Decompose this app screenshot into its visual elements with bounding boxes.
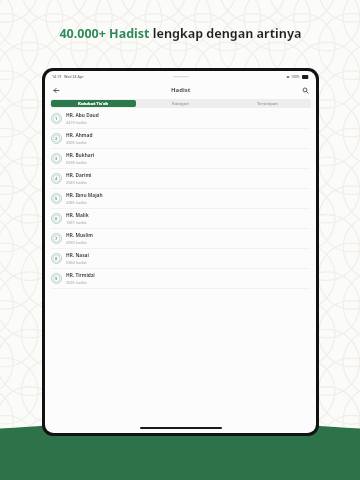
button[interactable]: Tersimpan (225, 100, 310, 107)
button[interactable]: Search (299, 84, 311, 96)
button[interactable]: 9 (45, 269, 316, 288)
button[interactable]: Kutubut Tis'ah (51, 100, 136, 107)
staticText: 4285 hadist (66, 200, 87, 205)
staticText: 1587 hadist (66, 220, 87, 225)
staticText: 2 (55, 136, 58, 141)
button[interactable]: 5 (45, 189, 316, 208)
staticText: 4930 hadist (66, 240, 87, 245)
button[interactable]: 2 (45, 129, 316, 148)
staticText: HR. Abu Daud (66, 112, 99, 119)
button[interactable]: 1 (45, 109, 316, 128)
staticText: 6638 hadist (66, 160, 87, 165)
staticText: HR. Ahmad (66, 132, 93, 139)
staticText: 5 (55, 196, 58, 201)
button[interactable]: Kategori (138, 100, 223, 107)
staticText: HR. Nasai (66, 252, 89, 259)
staticText: 3625 hadist (66, 280, 87, 285)
staticText: HR. Malik (66, 212, 89, 219)
button[interactable]: 7 (45, 229, 316, 248)
staticText: HR. Bukhari (66, 152, 95, 159)
staticText: 4 (55, 176, 58, 181)
staticText: 4305 hadist (66, 140, 87, 145)
button[interactable]: 4 (45, 169, 316, 188)
staticText: Wed 24 Apr (64, 74, 84, 79)
staticText: 5364 hadist (66, 260, 87, 265)
staticText: 7 (55, 236, 58, 241)
staticText: HR. Darimi (66, 172, 92, 179)
staticText: HR. Muslim (66, 232, 94, 239)
staticText: 100% (291, 74, 300, 79)
staticText: Tersimpan (257, 101, 278, 107)
button[interactable]: 6 (45, 209, 316, 228)
staticText: Hadist (171, 86, 191, 94)
button[interactable]: 8 (45, 249, 316, 268)
staticText: HR. Tirmidzi (66, 272, 95, 279)
staticText: HR. Ibnu Majah (66, 192, 103, 199)
staticText: 8 (55, 256, 58, 261)
staticText: Kutubut Tis'ah (78, 101, 109, 107)
staticText: 9 (55, 276, 58, 281)
button[interactable]: 3 (45, 149, 316, 168)
staticText: 40.000+ Hadist lengkap dengan artinya (59, 25, 302, 42)
staticText: 3 (55, 156, 58, 161)
staticText: 14.19 (52, 74, 62, 79)
button[interactable]: Back (50, 84, 62, 96)
staticText: 4419 hadist (66, 120, 87, 125)
staticText: 1 (55, 116, 58, 121)
staticText: 6 (55, 216, 58, 221)
staticText: 2949 hadist (66, 180, 87, 185)
staticText: Kategori (172, 101, 190, 107)
